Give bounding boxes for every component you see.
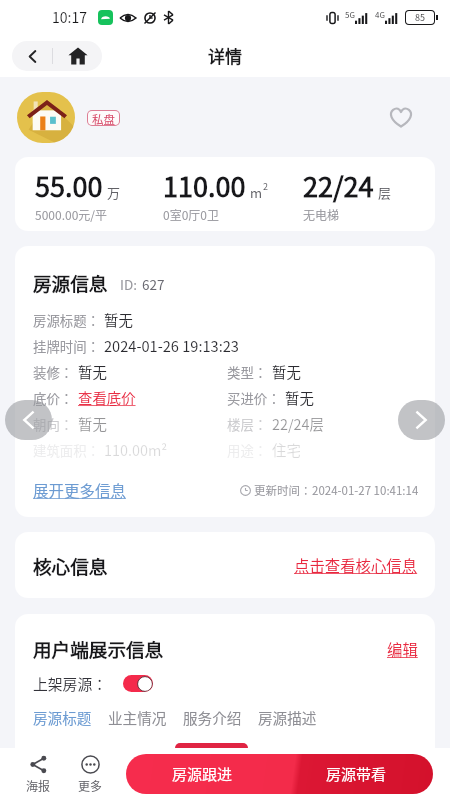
staticText: 2	[263, 180, 268, 193]
staticText: 上架房源：	[33, 673, 107, 694]
staticText: 挂牌时间：	[33, 336, 100, 355]
staticText: 4G	[375, 9, 385, 21]
button[interactable]	[123, 675, 153, 692]
button[interactable]: 业主情况	[108, 707, 167, 728]
staticText: 楼层：	[227, 414, 268, 433]
staticText: 建筑面积：	[33, 440, 100, 459]
staticText: 暂无	[272, 361, 301, 382]
staticText: 2024-01-27 10:41:14	[312, 482, 419, 499]
staticText: 用户端展示信息	[33, 635, 164, 662]
staticText: 点击查看核心信息	[294, 554, 418, 576]
staticText: 627	[142, 274, 165, 294]
staticText: ID:	[120, 274, 137, 294]
staticText: 85	[415, 11, 425, 24]
staticText: 房源信息	[33, 269, 108, 296]
button[interactable]: Home	[53, 41, 102, 71]
staticText: 暂无	[78, 361, 107, 382]
staticText: 朝向：	[33, 414, 74, 433]
staticText: 类型：	[227, 362, 268, 381]
staticText: 详情	[208, 43, 242, 68]
staticText: 55.00	[35, 166, 103, 205]
button[interactable]: Back	[12, 41, 52, 71]
staticText: 暂无	[78, 413, 107, 434]
staticText: 买进价：	[227, 388, 281, 407]
staticText: 暂无	[285, 387, 314, 408]
staticText: 海报	[26, 777, 51, 794]
staticText: 无电梯	[303, 206, 340, 223]
button[interactable]: Favorite	[384, 100, 418, 134]
button[interactable]: Next	[398, 400, 445, 440]
button[interactable]: 核心信息	[15, 532, 435, 598]
button[interactable]: 服务介绍	[183, 707, 242, 728]
staticText: 110.00	[163, 166, 246, 205]
staticText: 更新时间：	[254, 482, 312, 499]
button[interactable]: 房源跟进	[126, 754, 279, 794]
staticText: 暂无	[104, 309, 133, 330]
staticText: 10:17	[52, 7, 87, 27]
staticText: 住宅	[272, 439, 301, 460]
staticText: 房源标题：	[33, 310, 100, 329]
staticText: 房源标题	[33, 707, 92, 728]
staticText: 服务介绍	[183, 707, 242, 728]
staticText: 核心信息	[33, 552, 108, 579]
staticText: 业主情况	[108, 707, 167, 728]
staticText: 装修：	[33, 362, 74, 381]
button[interactable]: 海报	[12, 755, 64, 794]
button[interactable]: 房源标题	[33, 707, 92, 728]
button[interactable]: 展开更多信息	[33, 479, 127, 501]
staticText: 22/24	[303, 166, 374, 205]
staticText: 5G	[345, 9, 355, 21]
staticText: 底价：	[33, 388, 74, 407]
button[interactable]	[175, 743, 248, 763]
staticText: 房源跟进	[172, 763, 233, 785]
staticText: 私盘	[92, 111, 115, 125]
staticText: 用途：	[227, 440, 268, 459]
staticText: 万	[107, 183, 121, 202]
staticText: 5000.00元/平	[35, 206, 108, 223]
staticText: 层	[378, 183, 392, 202]
staticText: 2024-01-26 19:13:23	[104, 335, 239, 356]
staticText: 更多	[78, 777, 103, 794]
staticText: 22/24层	[272, 413, 324, 434]
button[interactable]: 房源带看	[279, 754, 433, 794]
staticText: 0室0厅0卫	[163, 206, 219, 223]
button[interactable]: 房源描述	[258, 707, 317, 728]
button[interactable]: 编辑	[387, 638, 418, 660]
button[interactable]: Previous	[5, 400, 52, 440]
staticText: 房源描述	[258, 707, 317, 728]
staticText: 房源带看	[326, 763, 387, 785]
staticText: 查看底价	[78, 387, 136, 408]
staticText: 110.00m²	[104, 439, 168, 460]
staticText: m	[250, 183, 263, 202]
button[interactable]: 更多	[64, 755, 116, 794]
